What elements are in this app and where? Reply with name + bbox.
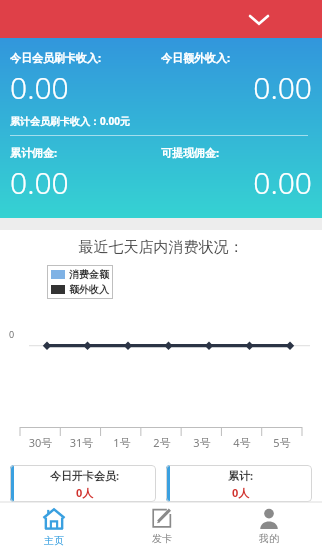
staticText: 主页 bbox=[44, 534, 64, 547]
staticText: 4号 bbox=[222, 435, 262, 450]
staticText: 0人 bbox=[232, 485, 250, 500]
staticText: 31号 bbox=[61, 435, 102, 450]
staticText: 0.00 bbox=[10, 162, 69, 203]
staticText: 2号 bbox=[142, 435, 182, 450]
button[interactable]: Expand bbox=[244, 4, 274, 34]
staticText: 今日额外收入: bbox=[161, 50, 231, 65]
staticText: 累计: bbox=[228, 468, 254, 483]
button[interactable]: 今日开卡会员: bbox=[10, 465, 156, 502]
staticText: 累计会员刷卡收入：0.00元 bbox=[10, 114, 130, 128]
staticText: 1号 bbox=[102, 435, 142, 450]
button[interactable]: 我的 bbox=[215, 502, 322, 550]
staticText: 0人 bbox=[76, 485, 94, 500]
staticText: 0 bbox=[9, 328, 15, 340]
staticText: 今日会员刷卡收入: bbox=[10, 50, 102, 65]
staticText: 最近七天店内消费状况： bbox=[0, 238, 322, 257]
staticText: 0.00 bbox=[161, 67, 312, 108]
button[interactable]: 累计: bbox=[166, 465, 312, 502]
staticText: 可提现佣金: bbox=[161, 145, 220, 160]
staticText: 我的 bbox=[259, 532, 279, 545]
staticText: 额外收入 bbox=[69, 283, 109, 296]
staticText: 累计佣金: bbox=[10, 145, 58, 160]
staticText: 今日开卡会员: bbox=[50, 468, 120, 483]
staticText: 发卡 bbox=[152, 532, 172, 545]
button[interactable]: 发卡 bbox=[108, 502, 215, 550]
button[interactable]: 主页 bbox=[0, 502, 108, 550]
staticText: 5号 bbox=[262, 435, 302, 450]
staticText: 0.00 bbox=[161, 162, 312, 203]
staticText: 3号 bbox=[182, 435, 222, 450]
staticText: 0.00 bbox=[10, 67, 69, 108]
staticText: 消费金额 bbox=[69, 268, 109, 281]
staticText: 30号 bbox=[20, 435, 61, 450]
